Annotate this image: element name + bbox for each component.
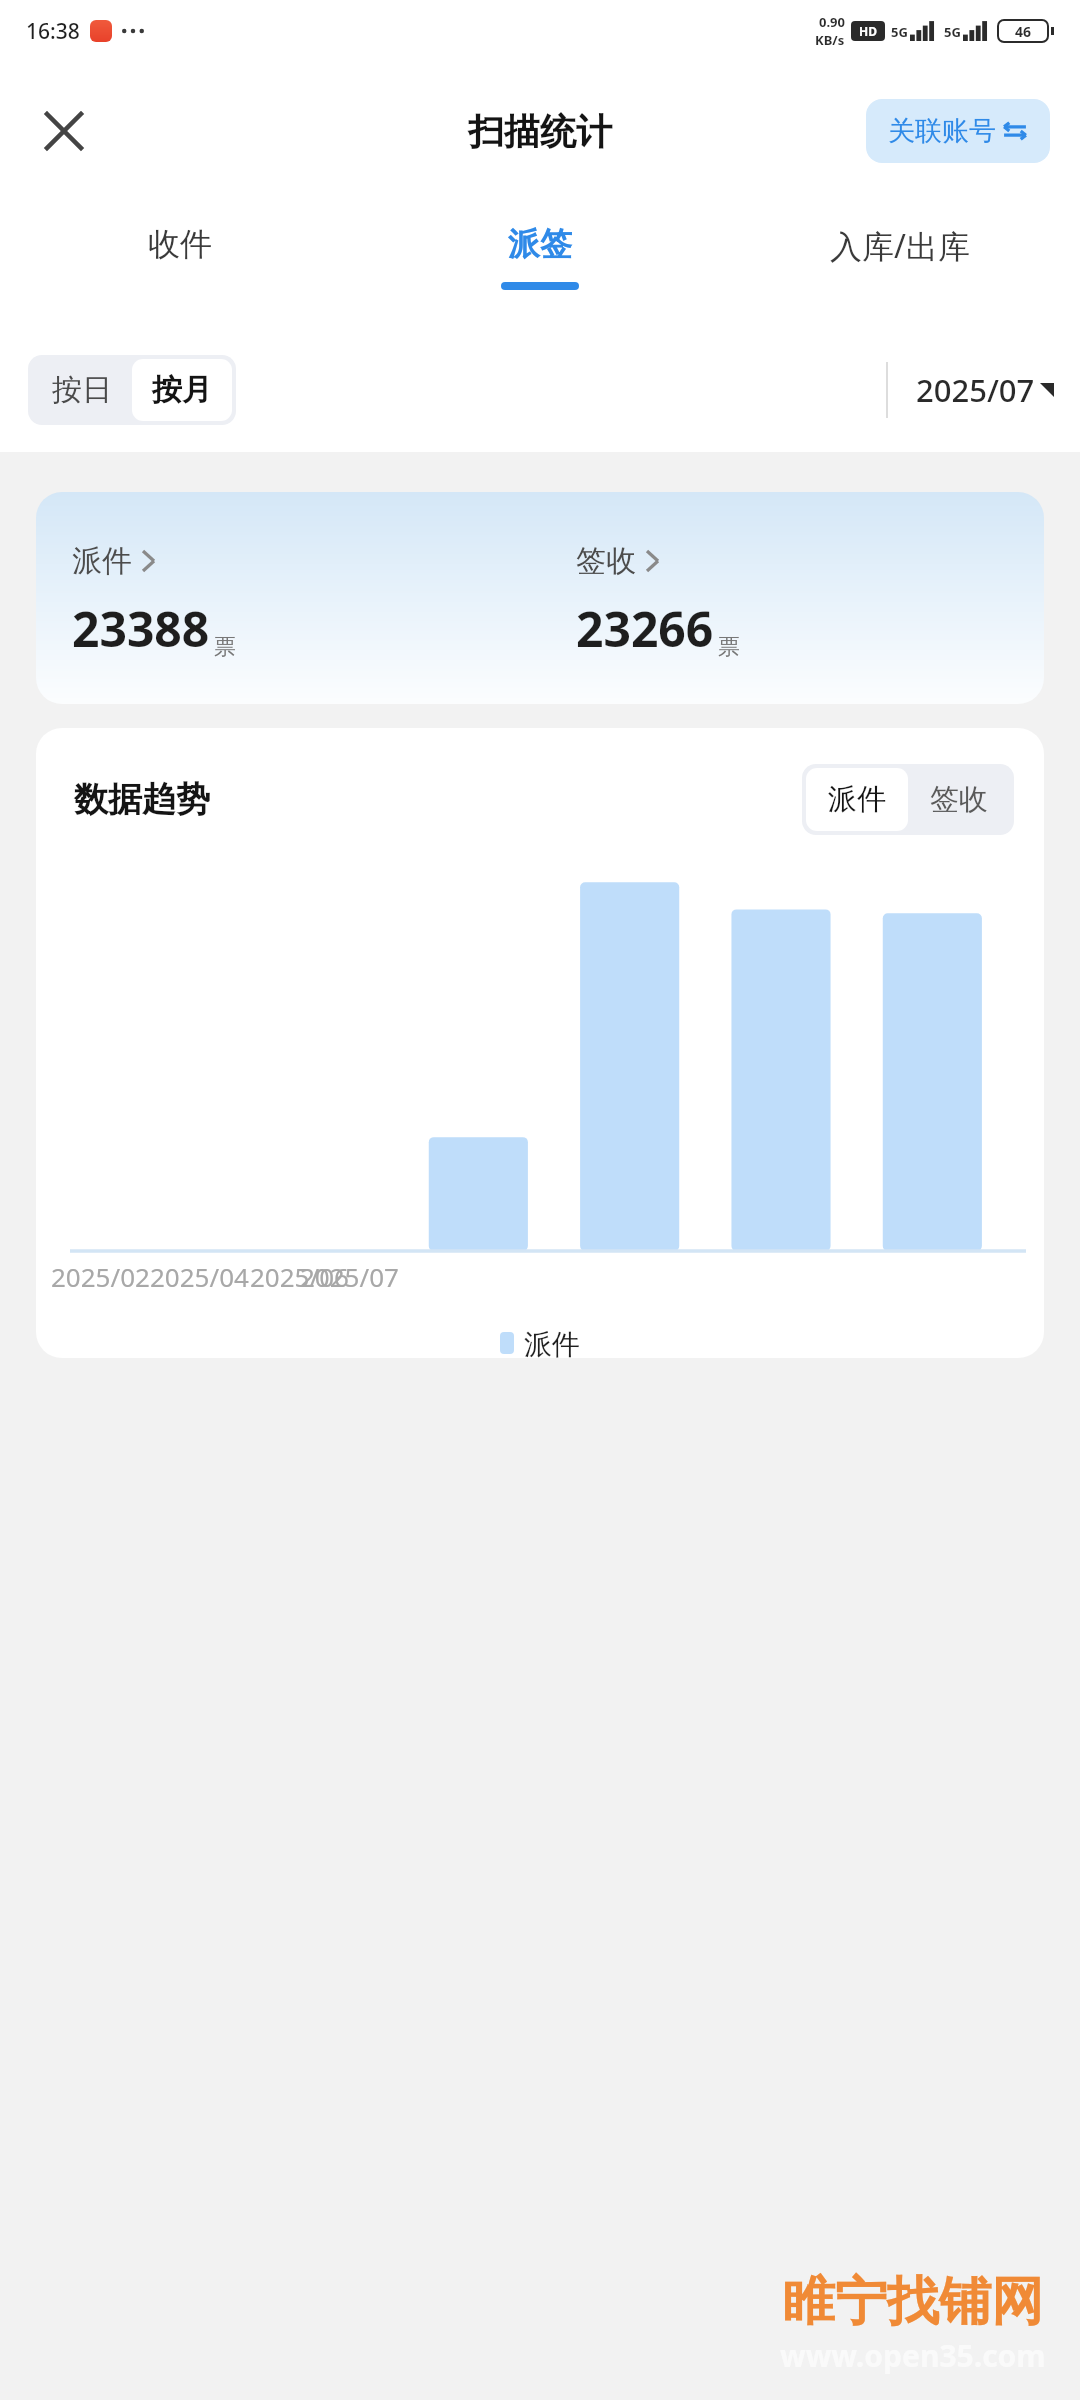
staticText: 23266 (576, 596, 714, 661)
staticText: 票 (214, 633, 236, 661)
staticText: 睢宁找铺网 (783, 2269, 1043, 2335)
staticText: 扫描统计 (468, 109, 612, 154)
staticText: KB/s (815, 31, 845, 49)
staticText: 关联账号 (888, 114, 996, 148)
staticText: 票 (718, 633, 740, 661)
staticText: www.open35.com (780, 2335, 1046, 2376)
staticText: 46 (1015, 22, 1032, 41)
staticText: 2025/02 (51, 1259, 150, 1294)
button[interactable]: 2025/07 (888, 369, 1054, 411)
button[interactable]: 关联账号 (866, 99, 1050, 163)
staticText: HD (859, 23, 877, 39)
staticText: 23388 (72, 596, 210, 661)
staticText: 按月 (152, 371, 212, 409)
staticText: 派签 (508, 224, 572, 264)
staticText: 派件 (828, 781, 886, 818)
button[interactable]: 签收 (908, 768, 1010, 831)
button[interactable]: 入库/出库 (720, 200, 1080, 328)
staticText: 5G (891, 23, 908, 41)
button[interactable]: Close (28, 95, 100, 167)
staticText: 2025/07 (300, 1259, 399, 1294)
button[interactable]: 派签 (360, 200, 720, 328)
button[interactable]: 签收 (540, 492, 1044, 704)
staticText: 签收 (930, 781, 988, 818)
button[interactable]: 派件 (36, 492, 540, 704)
staticText: 按日 (52, 371, 112, 409)
staticText: 派件 (72, 542, 132, 580)
staticText: 5G (944, 23, 961, 41)
staticText: 16:38 (26, 17, 80, 46)
staticText: 2025/06 (250, 1259, 349, 1294)
staticText: 数据趋势 (74, 778, 210, 821)
staticText: 入库/出库 (830, 224, 970, 268)
button[interactable]: 按日 (32, 359, 132, 421)
staticText: 0.90 (819, 13, 845, 31)
button[interactable]: 收件 (0, 200, 360, 328)
button[interactable]: 派件 (806, 768, 908, 831)
staticText: 收件 (148, 224, 212, 264)
staticText: 2025/07 (916, 369, 1035, 411)
staticText: 2025/04 (150, 1259, 249, 1294)
staticText: 派件 (524, 1327, 580, 1358)
button[interactable]: 按月 (132, 359, 232, 421)
staticText: 签收 (576, 542, 636, 580)
